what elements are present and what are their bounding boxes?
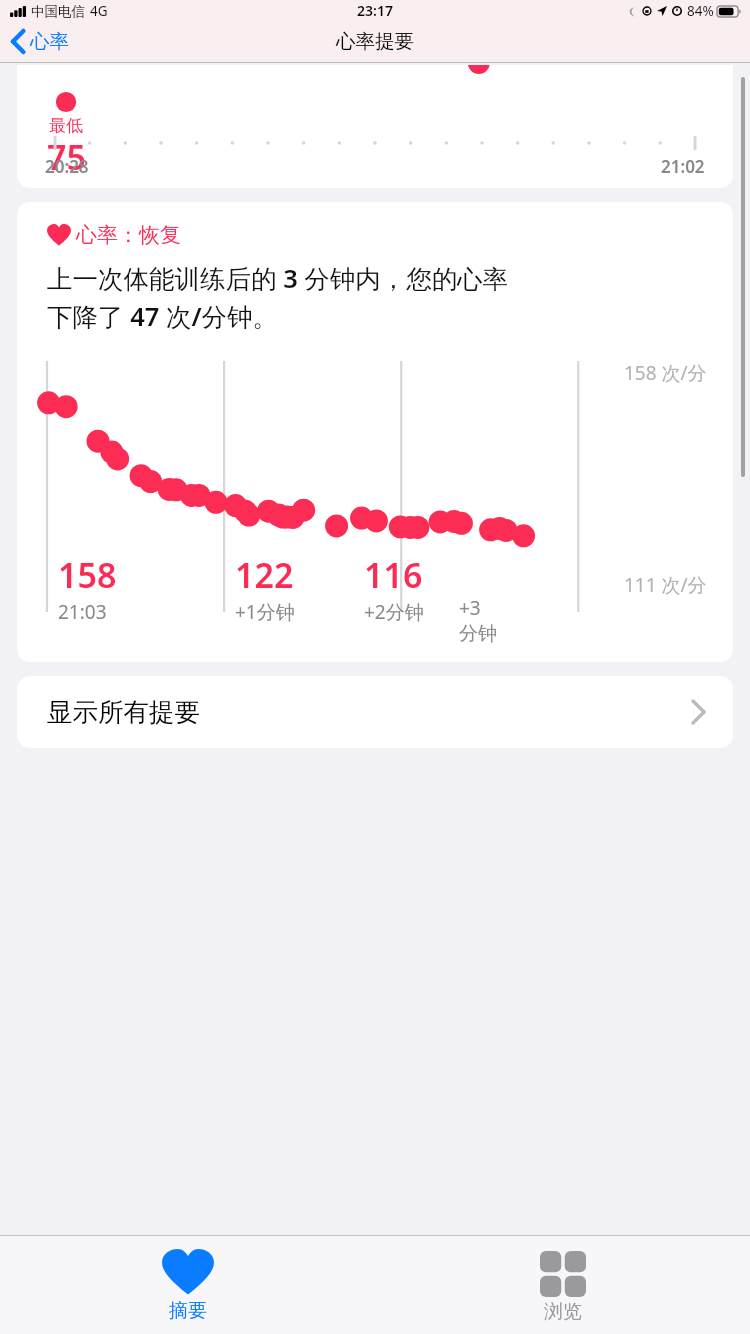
staticText: +1分钟 xyxy=(235,599,295,625)
staticText: 摘要 xyxy=(169,1299,207,1323)
staticText: +3分钟 xyxy=(459,595,499,646)
staticText: 23:17 xyxy=(357,1,393,20)
staticText: 75 xyxy=(47,134,86,180)
staticText: 122 xyxy=(235,552,294,598)
staticText: 21:03 xyxy=(58,599,107,625)
staticText: 116 xyxy=(364,552,423,598)
staticText: 中国电信 xyxy=(31,3,85,20)
staticText: 心率提要 xyxy=(336,29,414,54)
staticText: 下降了 47 次/分钟。 xyxy=(47,299,279,334)
staticText: 浏览 xyxy=(544,1300,582,1324)
staticText: 上一次体能训练后的 3 分钟内，您的心率 xyxy=(47,261,509,296)
button[interactable]: 心率 xyxy=(8,25,73,58)
staticText: +2分钟 xyxy=(364,599,424,625)
staticText: 111 次/分 xyxy=(624,572,707,598)
button[interactable]: 浏览 xyxy=(375,1236,750,1334)
staticText: 显示所有提要 xyxy=(47,696,200,728)
button[interactable]: 最低 xyxy=(17,65,733,188)
staticText: 158 xyxy=(58,552,117,598)
button[interactable]: 心率：恢复 xyxy=(17,202,733,662)
staticText: 20:28 xyxy=(45,155,89,178)
staticText: 21:02 xyxy=(661,155,705,178)
staticText: 心率：恢复 xyxy=(76,222,181,248)
button[interactable]: 摘要 xyxy=(0,1236,375,1334)
staticText: 84% xyxy=(687,2,714,20)
staticText: 心率 xyxy=(30,29,69,54)
staticText: 158 次/分 xyxy=(624,360,707,386)
staticText: 最低 xyxy=(49,115,83,136)
staticText: 4G xyxy=(90,2,108,20)
button[interactable]: 显示所有提要 xyxy=(17,676,733,748)
